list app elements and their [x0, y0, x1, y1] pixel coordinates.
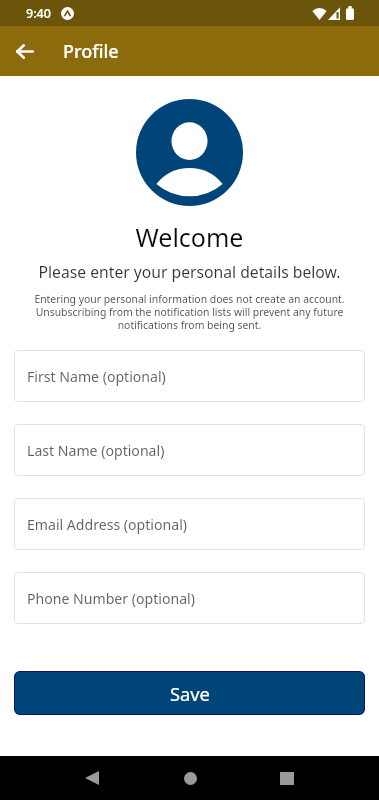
button[interactable]: Home — [168, 756, 212, 800]
staticText: Last Name (optional) — [27, 441, 165, 460]
button[interactable]: Back — [70, 756, 114, 800]
staticText: Please enter your personal details below… — [0, 261, 379, 282]
button[interactable]: Email Address (optional) — [14, 498, 365, 550]
staticText: Welcome — [0, 220, 379, 254]
staticText: Profile — [63, 39, 119, 64]
button[interactable]: Phone Number (optional) — [14, 572, 365, 624]
staticText: Entering your personal information does … — [20, 292, 359, 332]
staticText: Phone Number (optional) — [27, 589, 195, 608]
button[interactable]: Last Name (optional) — [14, 424, 365, 476]
button[interactable]: First Name (optional) — [14, 350, 365, 402]
staticText: 9:40 — [26, 5, 51, 22]
button[interactable]: Recents — [265, 756, 309, 800]
button[interactable]: Save — [14, 671, 365, 715]
staticText: First Name (optional) — [27, 367, 166, 386]
staticText: Save — [170, 681, 210, 706]
button[interactable]: Back — [6, 33, 43, 70]
staticText: Email Address (optional) — [27, 515, 188, 534]
